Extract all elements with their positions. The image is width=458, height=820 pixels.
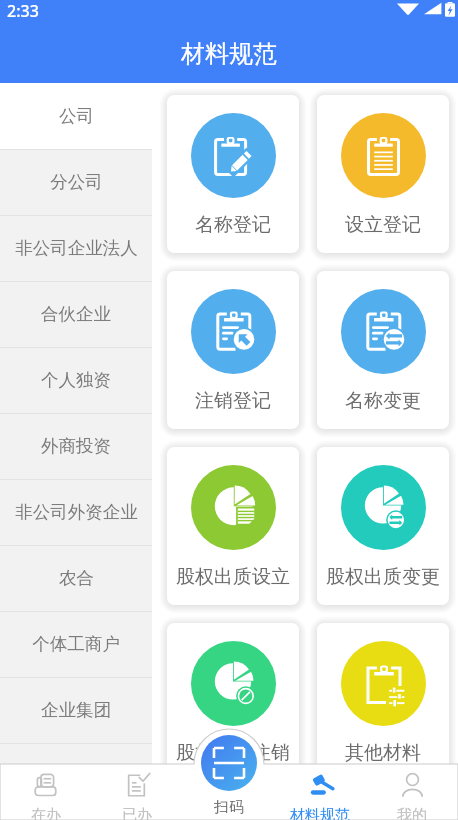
button[interactable]: 分公司 (0, 149, 152, 215)
staticText: 名称登记 (195, 213, 271, 237)
staticText: 材料规范 (181, 39, 277, 69)
staticText: 股权出质注销 (176, 741, 290, 765)
staticText: 股权出质变更 (326, 565, 440, 589)
staticText: 2:33 (7, 0, 39, 22)
button[interactable]: 设立登记 (317, 95, 449, 253)
button[interactable]: 外商投资 (0, 413, 152, 479)
button[interactable]: 非公司企业法人 (0, 215, 152, 281)
button[interactable]: 非公司外资企业 (0, 479, 152, 545)
staticText: 扫码 (214, 798, 244, 817)
button[interactable]: 材料规范 (274, 728, 366, 820)
button[interactable]: 其他材料 (317, 623, 449, 781)
staticText: 名称变更 (345, 389, 421, 413)
staticText: 外商投资 (41, 435, 111, 457)
button[interactable]: 个体工商户 (0, 611, 152, 677)
button[interactable]: 股权出质注销 (167, 623, 299, 781)
button[interactable]: 名称登记 (167, 95, 299, 253)
staticText: 公司 (59, 105, 94, 127)
button[interactable]: 个人独资 (0, 347, 152, 413)
button[interactable]: 其他 (0, 743, 152, 809)
button[interactable]: 注销登记 (167, 271, 299, 429)
staticText: 其他材料 (345, 741, 421, 765)
staticText: 我的 (397, 806, 427, 820)
button[interactable]: 我的 (366, 728, 458, 820)
button[interactable]: 股权出质变更 (317, 447, 449, 605)
button[interactable]: 公司 (0, 83, 152, 149)
staticText: 股权出质设立 (176, 565, 290, 589)
staticText: 个体工商户 (32, 633, 120, 655)
staticText: 材料规范 (290, 806, 350, 820)
staticText: 分公司 (50, 171, 103, 193)
button[interactable]: 名称变更 (317, 271, 449, 429)
staticText: 设立登记 (345, 213, 421, 237)
staticText: 在办 (31, 806, 61, 820)
button[interactable]: 在办 (0, 728, 91, 820)
staticText: 非公司外资企业 (15, 501, 138, 523)
staticText: 农合 (59, 567, 94, 589)
staticText: 合伙企业 (41, 303, 111, 325)
button[interactable]: 农合 (0, 545, 152, 611)
staticText: 企业集团 (41, 699, 111, 721)
button[interactable]: 已办 (91, 728, 182, 820)
staticText: 已办 (122, 806, 152, 820)
button[interactable]: 合伙企业 (0, 281, 152, 347)
staticText: 注销登记 (195, 389, 271, 413)
staticText: 非公司企业法人 (15, 237, 138, 259)
button[interactable]: 企业集团 (0, 677, 152, 743)
button[interactable]: 股权出质设立 (167, 447, 299, 605)
button[interactable]: 扫码 (201, 735, 257, 791)
staticText: 个人独资 (41, 369, 111, 391)
